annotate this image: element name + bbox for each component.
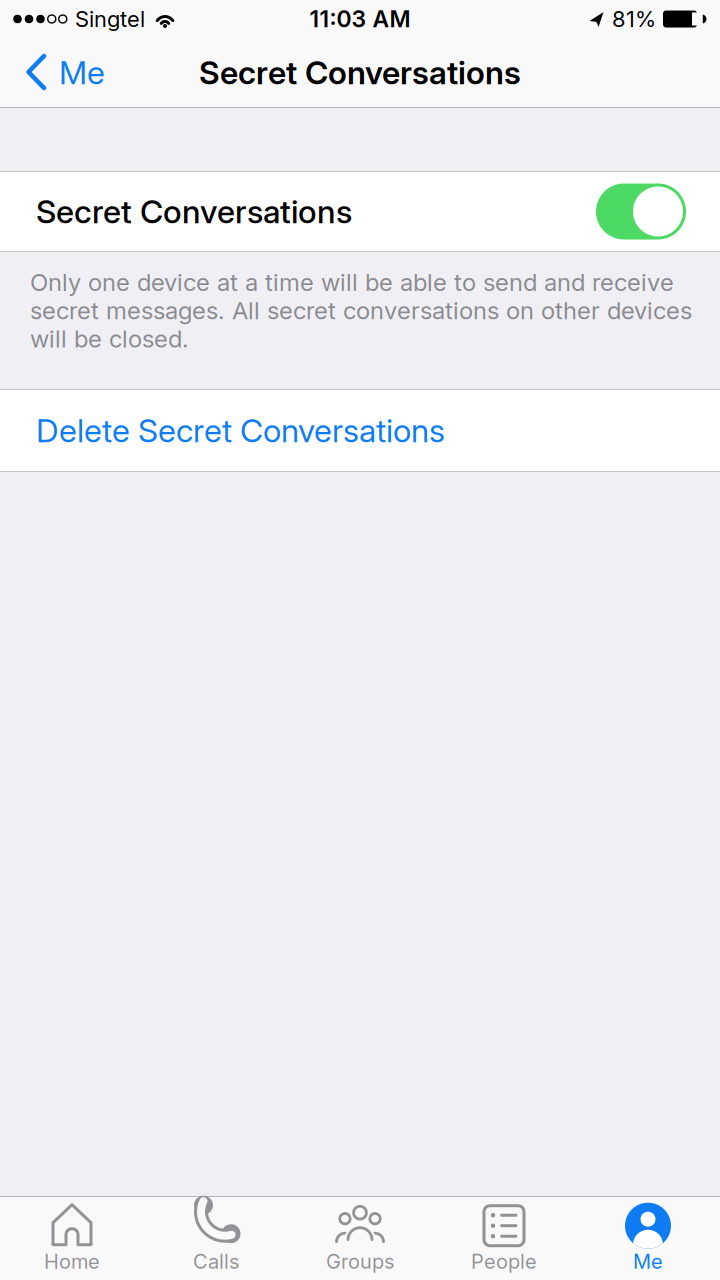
staticText: 81% [612, 6, 656, 32]
staticText: Singtel [75, 6, 145, 32]
button[interactable]: Calls [144, 1197, 288, 1280]
staticText: Delete Secret Conversations [36, 412, 445, 449]
button[interactable]: Secret Conversations [596, 183, 686, 239]
staticText: Me [633, 1250, 663, 1273]
staticText: Me [59, 54, 105, 91]
button[interactable]: Groups [288, 1197, 432, 1280]
button[interactable]: Delete Secret Conversations [0, 390, 720, 471]
staticText: Groups [326, 1250, 394, 1273]
staticText: 11:03 AM [309, 5, 410, 32]
staticText: Only one device at a time will be able t… [30, 268, 674, 296]
button[interactable]: Home [0, 1197, 144, 1280]
staticText: will be closed. [30, 325, 189, 353]
staticText: People [471, 1250, 537, 1273]
staticText: Secret Conversations [199, 54, 521, 91]
button[interactable]: Back [0, 54, 105, 91]
staticText: Secret Conversations [36, 193, 352, 230]
staticText: Calls [193, 1250, 239, 1273]
button[interactable]: People [432, 1197, 576, 1280]
button[interactable]: Me [576, 1197, 720, 1280]
staticText: secret messages. All secret conversation… [30, 296, 692, 325]
staticText: Home [44, 1250, 100, 1273]
